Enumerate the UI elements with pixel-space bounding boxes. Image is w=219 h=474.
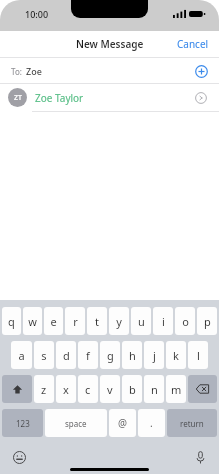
button[interactable]: Dictation [189, 446, 211, 468]
staticText: r [73, 314, 78, 329]
button[interactable]: To: [0, 58, 219, 83]
staticText: . [150, 416, 153, 430]
button[interactable]: x [56, 375, 76, 403]
staticText: m [171, 382, 182, 397]
button[interactable]: Shift [2, 375, 32, 403]
staticText: space [65, 418, 87, 429]
button[interactable]: t [87, 307, 107, 335]
staticText: t [95, 314, 99, 329]
button[interactable]: Backspace [188, 375, 217, 403]
button[interactable]: c [78, 375, 98, 403]
staticText: c [85, 382, 91, 397]
staticText: s [41, 348, 47, 363]
staticText: z [41, 382, 47, 397]
staticText: Zoe [26, 65, 42, 77]
button[interactable]: y [109, 307, 129, 335]
staticText: return [180, 418, 204, 429]
button[interactable]: z [34, 375, 54, 403]
staticText: e [50, 314, 57, 329]
staticText: j [153, 348, 156, 363]
button[interactable]: j [144, 341, 164, 369]
staticText: q [8, 314, 15, 329]
staticText: i [162, 314, 165, 329]
staticText: n [151, 382, 158, 397]
button[interactable]: o [175, 307, 195, 335]
staticText: ZT [14, 93, 22, 103]
button[interactable]: w [23, 307, 42, 335]
button[interactable]: return [167, 409, 217, 437]
button[interactable]: ZT [0, 84, 219, 111]
button[interactable]: Emoji keyboard [8, 446, 30, 468]
button[interactable]: s [34, 341, 54, 369]
staticText: 10:00 [25, 8, 49, 20]
button[interactable]: p [197, 307, 217, 335]
staticText: 123 [16, 418, 30, 429]
button[interactable]: . [138, 409, 165, 437]
button[interactable]: n [144, 375, 164, 403]
button[interactable]: e [44, 307, 63, 335]
staticText: Zoe Taylor [35, 91, 84, 105]
button[interactable]: d [56, 341, 76, 369]
staticText: a [18, 348, 25, 363]
staticText: To: [11, 66, 22, 77]
button[interactable]: k [166, 341, 186, 369]
button[interactable]: space [45, 409, 107, 437]
staticText: @ [118, 416, 127, 430]
staticText: g [107, 348, 114, 363]
button[interactable]: u [131, 307, 151, 335]
button[interactable]: @ [109, 409, 136, 437]
button[interactable]: g [100, 341, 120, 369]
button[interactable]: r [65, 307, 85, 335]
staticText: x [63, 382, 69, 397]
button[interactable]: v [100, 375, 120, 403]
staticText: o [182, 314, 189, 329]
button[interactable]: Cancel [167, 33, 219, 55]
button[interactable]: h [122, 341, 142, 369]
staticText: k [173, 348, 179, 363]
button[interactable]: l [188, 341, 208, 369]
staticText: v [107, 382, 113, 397]
button[interactable]: q [2, 307, 21, 335]
staticText: f [86, 348, 90, 363]
staticText: Cancel [177, 37, 209, 51]
button[interactable]: a [11, 341, 32, 369]
button[interactable]: f [78, 341, 98, 369]
staticText: h [129, 348, 136, 363]
button[interactable]: 123 [2, 409, 43, 437]
button[interactable]: Add contact [191, 61, 211, 81]
staticText: b [129, 382, 136, 397]
staticText: u [138, 314, 145, 329]
button[interactable]: m [166, 375, 186, 403]
button[interactable]: b [122, 375, 142, 403]
staticText: w [28, 314, 37, 329]
staticText: d [63, 348, 70, 363]
staticText: New Message [76, 37, 144, 51]
button[interactable]: i [153, 307, 173, 335]
staticText: y [116, 314, 122, 329]
button[interactable]: Contact details [191, 88, 211, 108]
staticText: l [197, 348, 200, 363]
staticText: p [204, 314, 211, 329]
